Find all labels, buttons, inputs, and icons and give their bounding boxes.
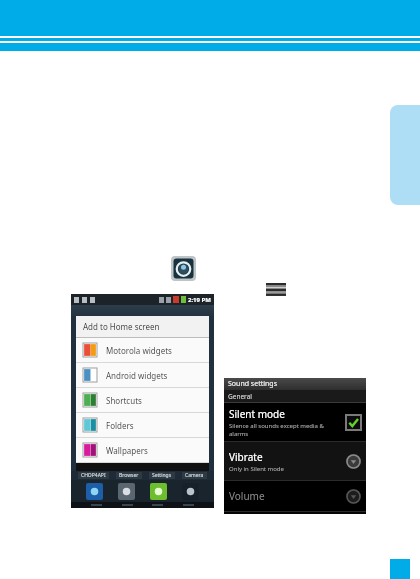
staticText: Wallpapers (106, 445, 148, 456)
staticText: General (228, 392, 252, 401)
button[interactable]: Shortcuts (76, 388, 209, 412)
button[interactable]: Silent mode (224, 403, 366, 441)
button[interactable]: Expand (346, 454, 361, 469)
button[interactable]: Vibrate (224, 442, 366, 480)
staticText: 2:19 PM (188, 296, 211, 304)
staticText: Only in Silent mode (229, 465, 284, 473)
button[interactable]: Dock app (182, 483, 199, 500)
button[interactable]: Expand (346, 489, 361, 504)
button[interactable]: Sound settings screenshot (224, 378, 366, 514)
button[interactable]: Folders (76, 413, 209, 437)
staticText: Folders (106, 420, 134, 431)
button[interactable]: Wallpapers (76, 438, 209, 462)
button[interactable]: Add to Home screen screenshot (71, 294, 214, 508)
button[interactable]: Dock app (86, 483, 103, 500)
button[interactable]: Volume (224, 481, 366, 511)
button[interactable]: Menu (266, 283, 286, 297)
button[interactable]: Chapter tab (390, 105, 420, 205)
staticText: CHOP4API (81, 472, 106, 479)
button[interactable]: Motorola widgets (76, 338, 209, 362)
staticText: Sound settings (228, 379, 277, 389)
staticText: Settings (152, 472, 172, 479)
button[interactable]: Android widgets (76, 363, 209, 387)
staticText: Add to Home screen (83, 321, 160, 332)
staticText: Motorola widgets (106, 345, 172, 356)
button[interactable]: Silent mode checkbox (346, 415, 361, 430)
staticText: Camera (185, 472, 204, 479)
button[interactable]: Dock app (118, 483, 135, 500)
staticText: Browser (119, 472, 139, 479)
staticText: Silent mode (229, 407, 285, 421)
staticText: Vibrate (229, 450, 263, 464)
staticText: Android widgets (106, 370, 168, 381)
button[interactable]: Dock app (150, 483, 167, 500)
staticText: Shortcuts (106, 395, 142, 406)
staticText: Volume (229, 489, 265, 503)
button[interactable]: Camera app icon (171, 256, 196, 281)
staticText: Silence all sounds except media & alarms (229, 422, 324, 438)
